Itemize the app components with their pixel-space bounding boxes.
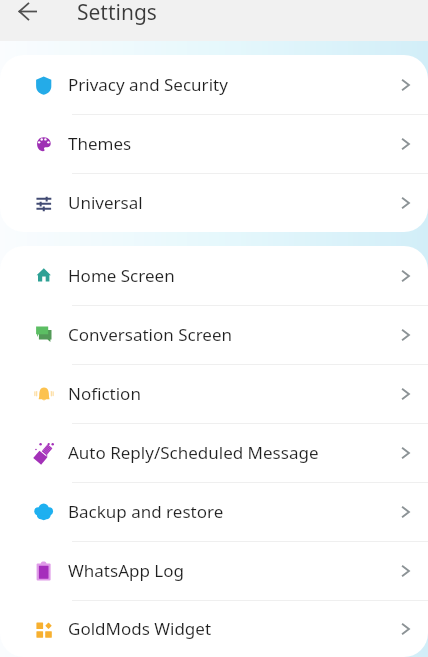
staticText: Home Screen — [68, 264, 382, 287]
button[interactable]: Home Screen — [0, 246, 428, 305]
staticText: Themes — [68, 132, 382, 155]
staticText: Universal — [68, 191, 382, 214]
button[interactable]: Backup and restore — [0, 482, 428, 541]
button[interactable]: Privacy and Security — [0, 55, 428, 114]
button[interactable]: GoldMods Widget — [0, 600, 428, 657]
button[interactable]: Universal — [0, 173, 428, 232]
button[interactable]: Themes — [0, 114, 428, 173]
button[interactable]: Auto Reply/Scheduled Message — [0, 423, 428, 482]
button[interactable]: Nofiction — [0, 364, 428, 423]
staticText: WhatsApp Log — [68, 559, 382, 582]
button[interactable]: Back — [9, 0, 46, 30]
staticText: Settings — [77, 0, 157, 27]
staticText: Privacy and Security — [68, 73, 382, 96]
staticText: Nofiction — [68, 382, 382, 405]
staticText: GoldMods Widget — [68, 617, 382, 640]
button[interactable]: WhatsApp Log — [0, 541, 428, 600]
staticText: Auto Reply/Scheduled Message — [68, 441, 382, 464]
button[interactable]: Conversation Screen — [0, 305, 428, 364]
staticText: Backup and restore — [68, 500, 382, 523]
staticText: Conversation Screen — [68, 323, 382, 346]
